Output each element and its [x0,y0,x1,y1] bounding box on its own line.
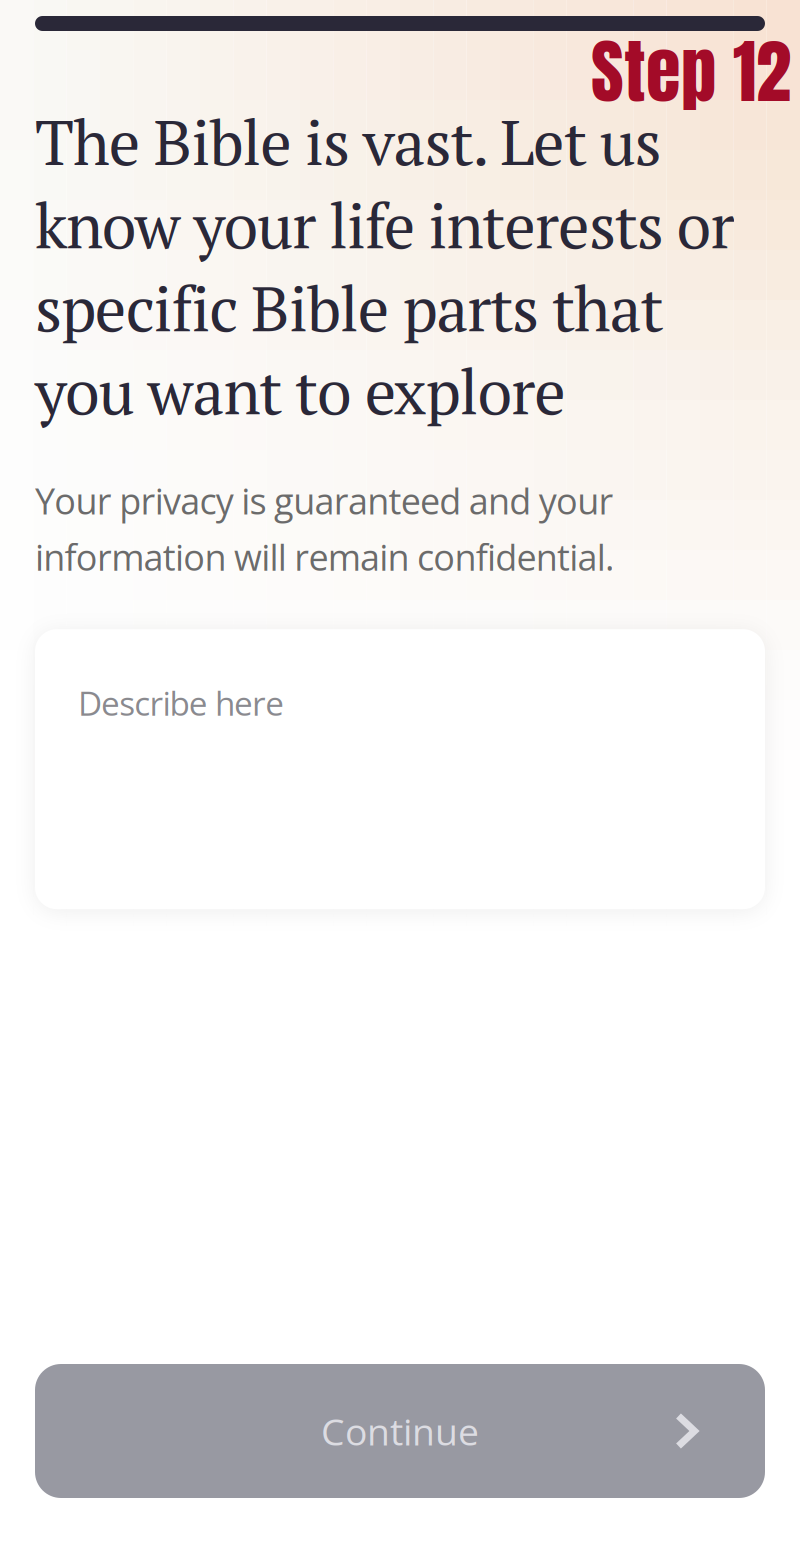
staticText: Your privacy is guaranteed and your info… [35,476,614,581]
staticText: Continue [321,1406,479,1456]
button[interactable]: Describe here [35,629,765,909]
button[interactable]: Continue [35,1364,765,1498]
staticText: Describe here [78,680,284,726]
staticText: The Bible is vast. Let us know your life… [35,100,734,432]
staticText: Step 12 [591,18,791,124]
